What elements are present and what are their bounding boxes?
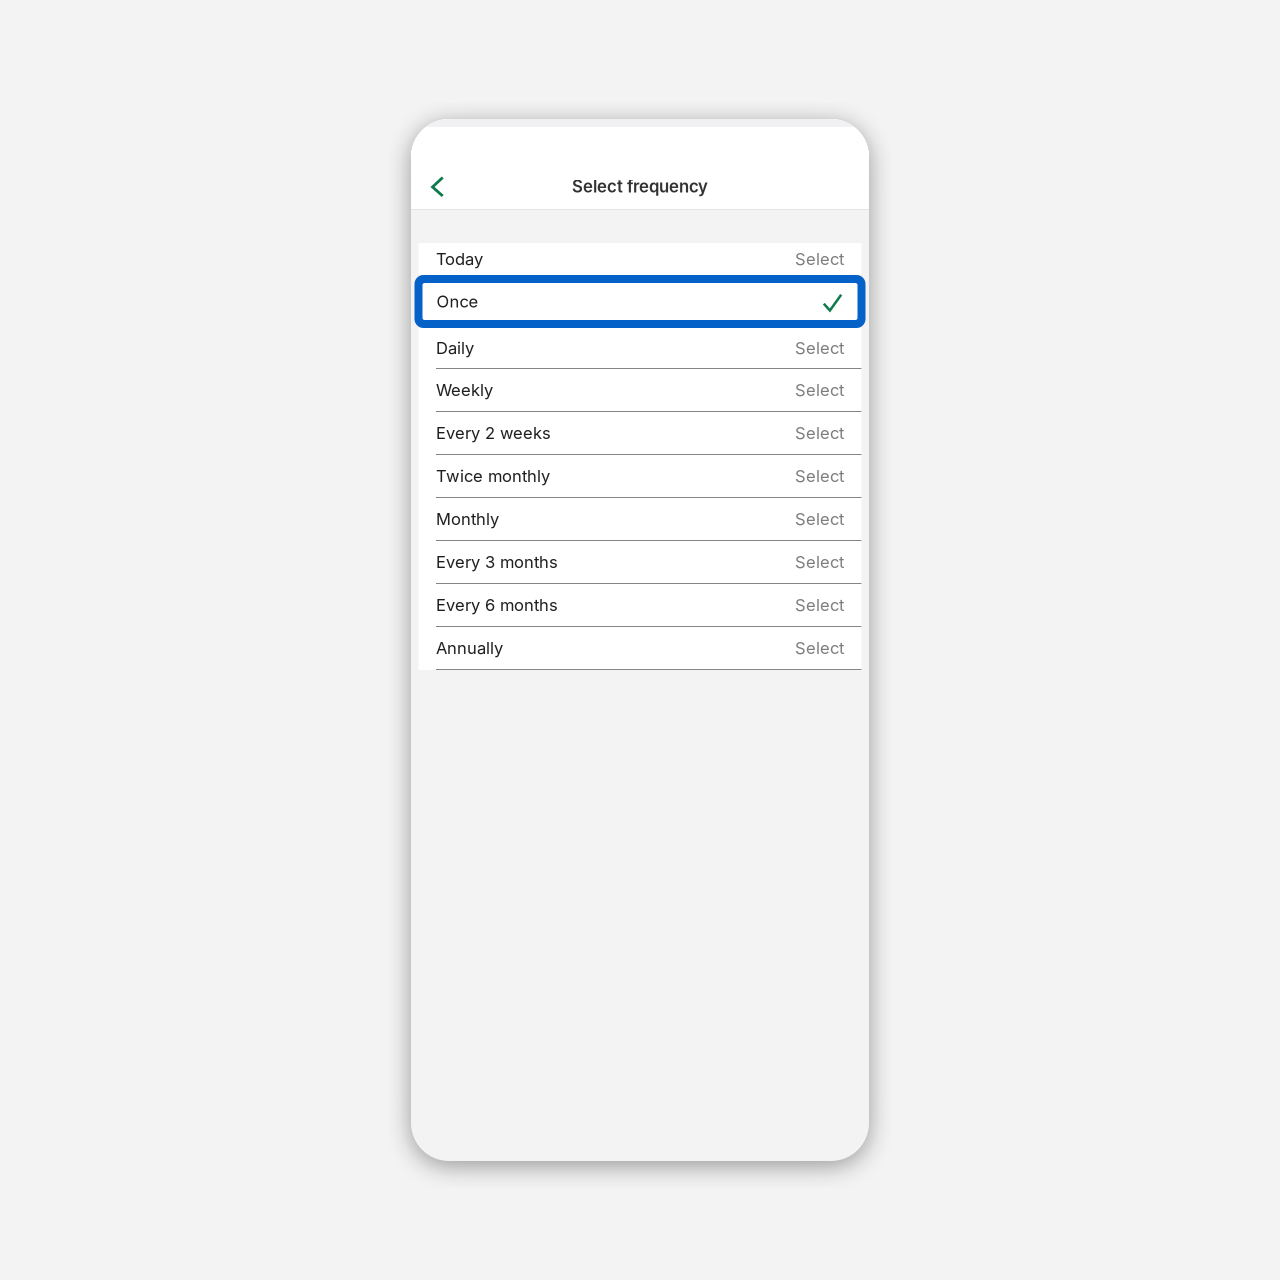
staticText: Select — [795, 423, 844, 443]
staticText: Once — [436, 291, 478, 311]
staticText: Select — [795, 338, 844, 358]
staticText: Weekly — [436, 380, 493, 400]
staticText: Select — [795, 466, 844, 486]
button[interactable]: Twice monthly — [418, 455, 861, 498]
staticText: Select — [795, 380, 844, 400]
staticText: Select — [795, 595, 844, 615]
staticText: Select — [795, 509, 844, 529]
staticText: Monthly — [436, 509, 499, 529]
button[interactable]: Annually — [418, 627, 861, 670]
staticText: Today — [436, 249, 483, 269]
button[interactable]: Every 6 months — [418, 584, 861, 627]
staticText: Select — [795, 638, 844, 658]
staticText: Every 3 months — [436, 552, 558, 572]
staticText: Select — [795, 249, 844, 269]
button[interactable]: Every 2 weeks — [418, 412, 861, 455]
staticText: Daily — [436, 338, 474, 358]
button[interactable]: Weekly — [418, 369, 861, 412]
button[interactable]: Monthly — [418, 498, 861, 541]
staticText: Annually — [436, 638, 503, 658]
staticText: Twice monthly — [436, 466, 550, 486]
button[interactable]: Back — [411, 165, 462, 208]
button[interactable]: Daily — [418, 328, 861, 369]
staticText: Select — [795, 552, 844, 572]
button[interactable]: Every 3 months — [418, 541, 861, 584]
staticText: Select frequency — [572, 176, 708, 197]
staticText: Every 6 months — [436, 595, 558, 615]
button[interactable]: Once — [414, 275, 865, 328]
staticText: Every 2 weeks — [436, 423, 551, 443]
button[interactable]: Today — [418, 243, 861, 275]
